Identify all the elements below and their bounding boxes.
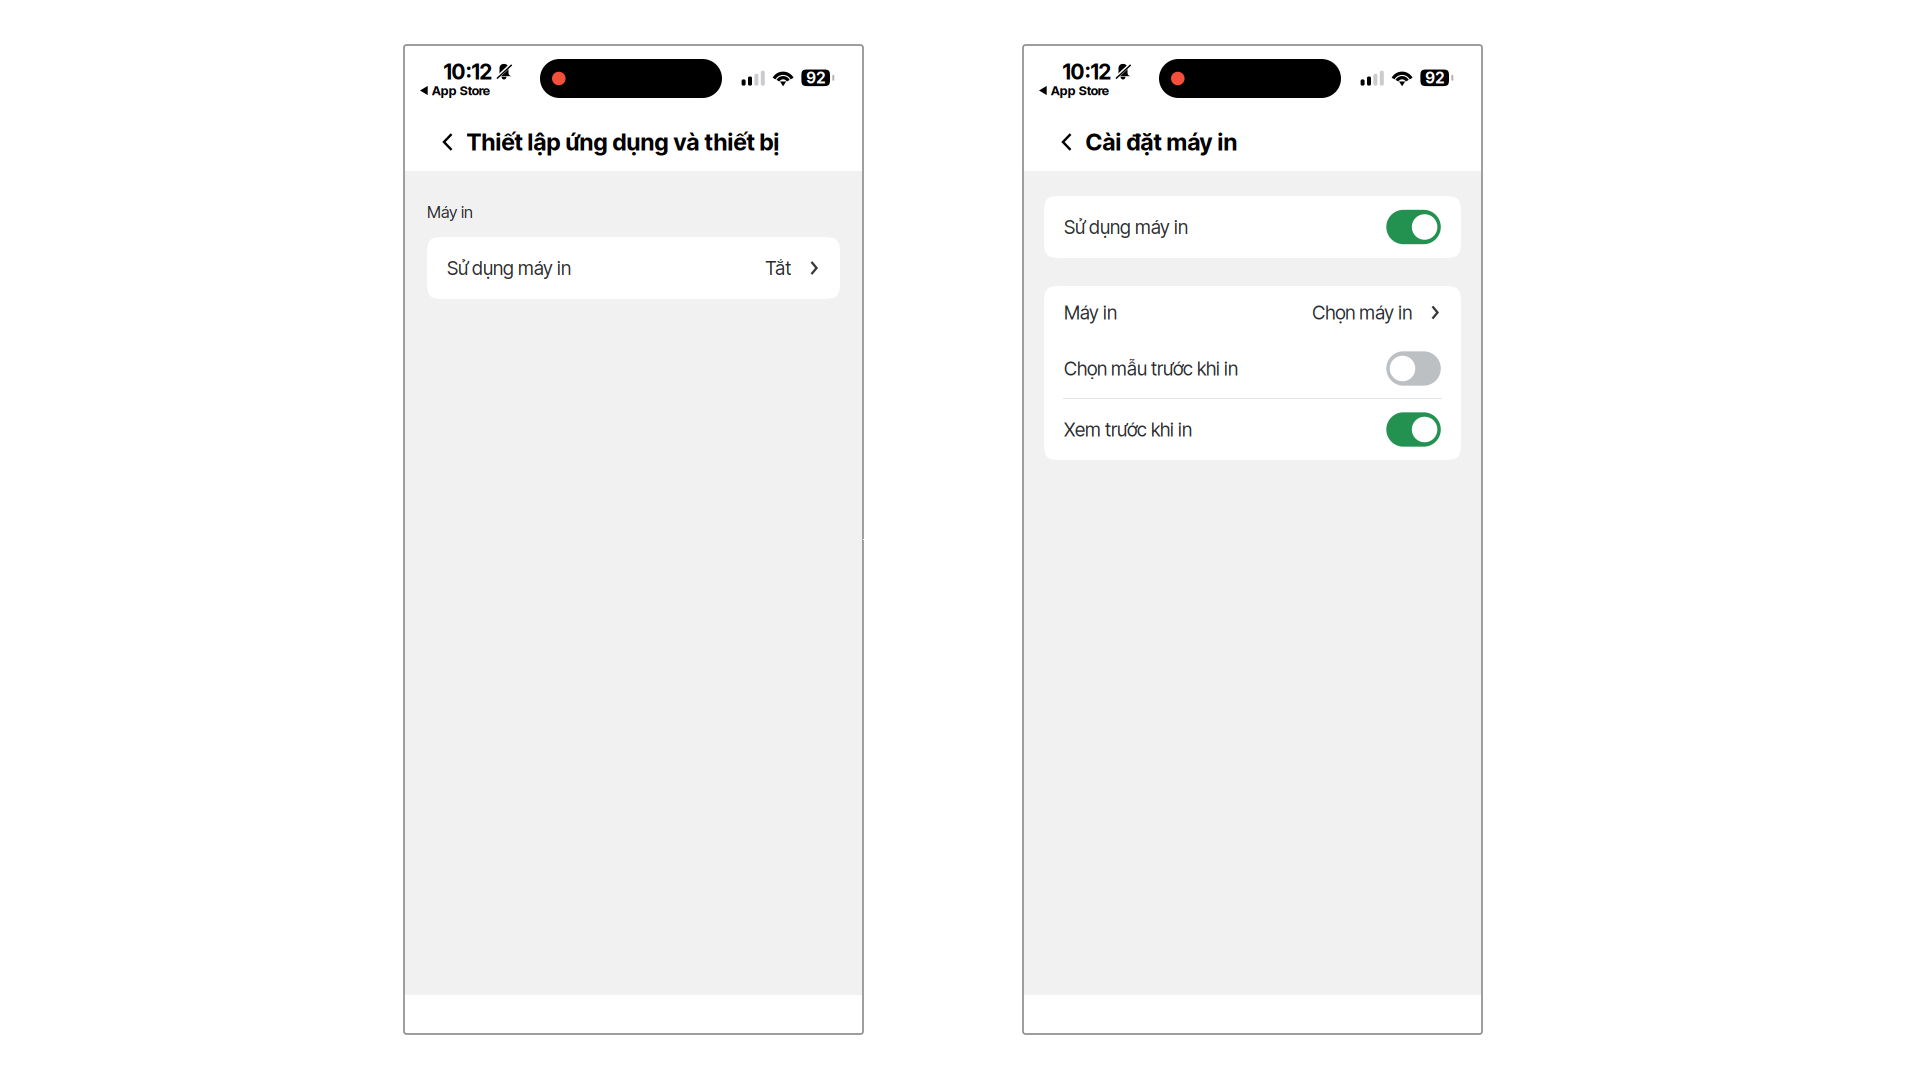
staticText: Chọn máy in — [1312, 301, 1412, 324]
staticText: Cài đặt máy in — [1085, 128, 1237, 156]
staticText: 92 — [806, 68, 825, 87]
staticText: Thiết lập ứng dụng và thiết bị — [466, 128, 779, 156]
staticText: App Store — [1051, 83, 1109, 98]
staticText: App Store — [432, 83, 490, 98]
staticText: Xem trước khi in — [1064, 418, 1192, 441]
staticText: Tắt — [765, 256, 791, 279]
staticText: Máy in — [1064, 301, 1117, 324]
button[interactable]: Sử dụng máy in — [1044, 196, 1461, 258]
button[interactable]: Back — [1048, 113, 1085, 171]
staticText: Chọn mẫu trước khi in — [1064, 357, 1238, 380]
staticText: 10:12 — [443, 59, 492, 84]
button[interactable]: Sử dụng máy in — [427, 237, 840, 299]
button[interactable]: Máy in — [1044, 286, 1461, 339]
staticText: 92 — [1425, 68, 1444, 87]
button[interactable]: Back — [429, 113, 466, 171]
staticText: Sử dụng máy in — [1064, 215, 1188, 238]
staticText: Máy in — [427, 202, 473, 222]
staticText: Sử dụng máy in — [447, 256, 571, 279]
staticText: 10:12 — [1062, 59, 1111, 84]
button[interactable]: Xem trước khi in — [1044, 399, 1461, 460]
button[interactable]: Chọn mẫu trước khi in — [1044, 339, 1461, 398]
